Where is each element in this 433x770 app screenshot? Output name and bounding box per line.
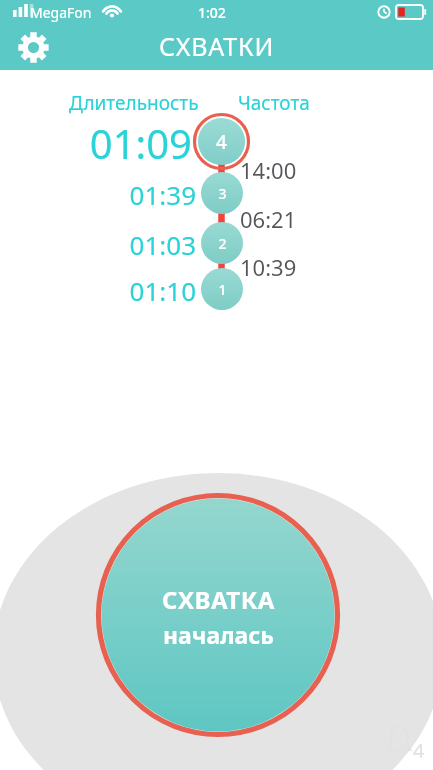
staticText: 01:39 xyxy=(129,177,196,210)
staticText: 1 xyxy=(218,280,227,299)
staticText: MegaFon xyxy=(30,3,92,22)
staticText: 4 xyxy=(413,737,425,764)
staticText: 10:39 xyxy=(240,252,297,282)
staticText: 01:03 xyxy=(129,227,196,260)
button[interactable]: 4 xyxy=(193,113,250,170)
staticText: СХВАТКИ xyxy=(159,29,275,63)
staticText: 3 xyxy=(218,184,227,203)
button[interactable]: 1 xyxy=(201,268,243,310)
staticText: 01:09 xyxy=(89,116,192,166)
button[interactable]: Settings xyxy=(9,24,57,70)
staticText: 14:00 xyxy=(240,155,297,185)
staticText: 4 xyxy=(216,129,227,155)
button[interactable]: СХВАТКА xyxy=(96,493,340,737)
staticText: Частота xyxy=(238,90,310,116)
button[interactable]: 3 xyxy=(201,172,243,214)
staticText: Длительность xyxy=(69,90,199,116)
staticText: 1:02 xyxy=(198,3,226,22)
staticText: СХВАТКА xyxy=(162,583,275,616)
button[interactable]: 2 xyxy=(201,222,243,264)
staticText: 2 xyxy=(218,234,227,253)
staticText: 01:10 xyxy=(129,273,196,306)
staticText: 06:21 xyxy=(240,204,297,234)
staticText: началась xyxy=(163,619,274,650)
